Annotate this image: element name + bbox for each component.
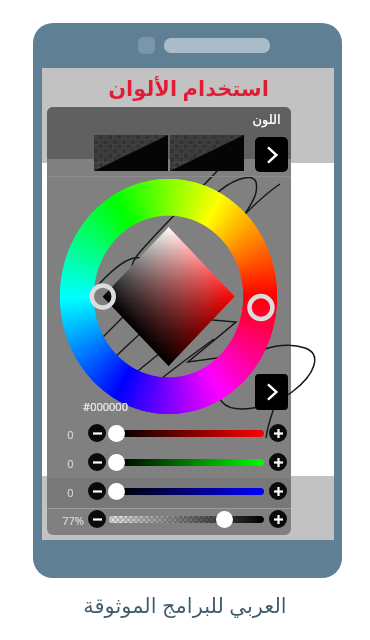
staticText: العربي للبرامج الموثوقة — [83, 591, 287, 620]
button[interactable]: Increase alpha — [269, 510, 287, 528]
button[interactable]: More options — [255, 374, 288, 410]
button[interactable]: Decrease — [88, 453, 106, 471]
staticText: استخدام الألوان — [108, 74, 269, 103]
staticText: #000000 — [83, 399, 128, 414]
button[interactable]: Increase — [269, 453, 287, 471]
button[interactable]: Decrease — [88, 482, 106, 500]
staticText: 77% — [62, 513, 84, 528]
staticText: اللون — [252, 112, 281, 127]
staticText: 0 — [67, 485, 74, 500]
staticText: 0 — [67, 427, 74, 442]
button[interactable]: Open colour list — [255, 137, 288, 172]
button[interactable]: Decrease — [88, 424, 106, 442]
staticText: 0 — [67, 456, 74, 471]
button[interactable]: Decrease alpha — [88, 510, 106, 528]
button[interactable]: Increase — [269, 424, 287, 442]
button[interactable]: Increase — [269, 482, 287, 500]
